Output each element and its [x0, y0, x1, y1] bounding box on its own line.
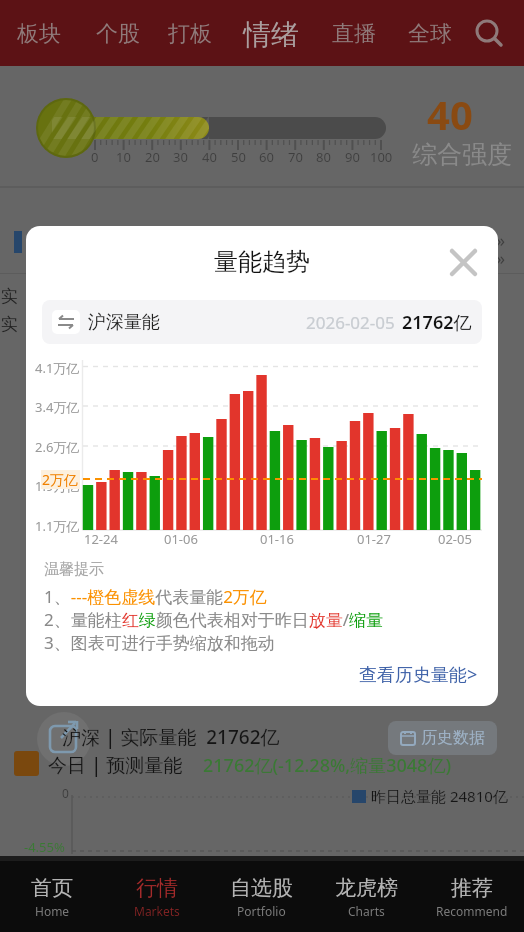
staticText: 21762亿	[402, 310, 472, 335]
button[interactable]	[468, 12, 512, 56]
staticText: 1.9万亿	[35, 477, 80, 495]
staticText: 50	[231, 148, 246, 166]
button[interactable]: 个股	[93, 10, 143, 58]
button[interactable]: 打板	[165, 10, 215, 58]
button[interactable]: 首页	[0, 875, 104, 932]
staticText: 沪深 | 实际量能 21762亿	[62, 724, 280, 750]
staticText: 70	[288, 148, 303, 166]
staticText: 温馨提示	[44, 560, 104, 579]
staticText: 0	[91, 148, 99, 166]
staticText: »	[496, 246, 506, 271]
staticText: 01-06	[164, 530, 198, 548]
staticText: 个股	[96, 20, 140, 48]
staticText: 02-05	[438, 530, 472, 548]
staticText: Charts	[348, 903, 385, 919]
staticText: 实	[1, 314, 18, 335]
staticText: 龙虎榜	[335, 875, 398, 901]
staticText: 2、量能柱红绿颜色代表相对于昨日放量/缩量	[44, 608, 384, 631]
staticText: 01-27	[357, 530, 391, 548]
button[interactable]: 查看历史量能>	[356, 659, 478, 689]
staticText: 首页	[31, 875, 73, 901]
staticText: 90	[345, 148, 360, 166]
staticText: 推荐	[451, 875, 493, 901]
staticText: 板块	[17, 20, 61, 48]
staticText: -4.55%	[24, 838, 65, 856]
staticText: 40	[202, 148, 217, 166]
button[interactable]: 推荐	[419, 875, 524, 932]
staticText: 量能趋势	[214, 247, 310, 277]
staticText: 10	[116, 148, 131, 166]
button[interactable]: 行情	[104, 875, 209, 932]
staticText: »	[496, 228, 506, 253]
staticText: 21762亿(-12.28%,缩量3048亿)	[203, 753, 452, 778]
staticText: 全球	[408, 20, 452, 48]
staticText: 40	[427, 87, 473, 141]
staticText: 昨日总量能 24810亿	[371, 786, 508, 806]
button[interactable]: 自选股	[209, 875, 314, 932]
staticText: 2026-02-05	[306, 311, 395, 334]
staticText: 打板	[168, 20, 212, 48]
staticText: 1.1万亿	[35, 517, 80, 535]
staticText: 综合强度	[412, 139, 512, 167]
button[interactable]: 直播	[329, 10, 379, 58]
staticText: 实	[1, 286, 18, 307]
staticText: Recommend	[436, 903, 508, 919]
staticText: 01-16	[260, 530, 294, 548]
staticText: 今日 | 预测量能	[48, 752, 183, 778]
staticText: 历史数据	[421, 728, 485, 748]
staticText: 3.4万亿	[35, 398, 80, 416]
staticText: Markets	[134, 903, 180, 919]
staticText: 查看历史量能>	[359, 662, 478, 687]
button[interactable]: 板块	[14, 10, 64, 58]
staticText: 12-24	[84, 530, 118, 548]
staticText: Portfolio	[237, 903, 286, 919]
staticText: 60	[259, 148, 274, 166]
staticText: 4.1万亿	[35, 359, 80, 377]
staticText: 自选股	[230, 875, 293, 901]
staticText: Home	[35, 903, 70, 919]
staticText: 1、---橙色虚线代表量能2万亿	[44, 585, 267, 608]
button[interactable]: 情绪	[240, 10, 302, 58]
staticText: 0	[62, 785, 69, 801]
button[interactable]	[440, 239, 486, 285]
button[interactable]: 龙虎榜	[314, 875, 419, 932]
staticText: 2.6万亿	[35, 438, 80, 456]
button[interactable]: 历史数据	[388, 721, 497, 755]
staticText: 20	[145, 148, 160, 166]
staticText: 30	[173, 148, 188, 166]
staticText: 80	[316, 148, 331, 166]
staticText: 100	[370, 148, 393, 166]
staticText: 行情	[136, 875, 178, 901]
staticText: 直播	[332, 20, 376, 48]
staticText: 2万亿	[42, 470, 79, 489]
staticText: 沪深量能	[88, 311, 160, 334]
staticText: 情绪	[243, 17, 299, 52]
button[interactable]: 全球	[405, 10, 455, 58]
button[interactable]: 沪深量能	[42, 300, 482, 344]
staticText: 3、图表可进行手势缩放和拖动	[44, 631, 275, 654]
